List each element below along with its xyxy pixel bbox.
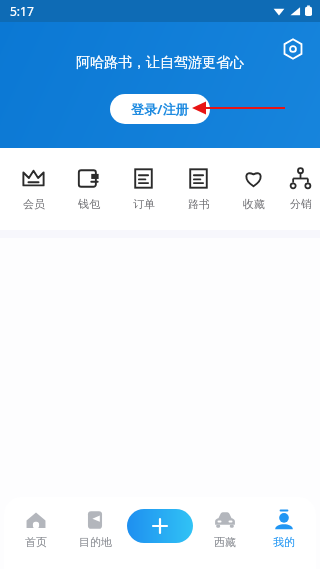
button[interactable]: 路书	[171, 148, 226, 230]
button[interactable]: 登录/注册	[110, 94, 210, 124]
button[interactable]: 收藏	[226, 148, 281, 230]
button[interactable]: 订单	[116, 148, 171, 230]
staticText: 我的	[273, 535, 295, 549]
staticText: 订单	[133, 197, 155, 211]
button[interactable]: 钱包	[61, 148, 116, 230]
staticText: 西藏	[214, 535, 236, 549]
staticText: 目的地	[79, 535, 112, 549]
button[interactable]: 目的地	[67, 509, 123, 549]
button[interactable]: Add	[127, 509, 193, 543]
staticText: 路书	[188, 197, 210, 211]
button[interactable]: 会员	[6, 148, 61, 230]
staticText: 收藏	[243, 197, 265, 211]
staticText: 会员	[23, 197, 45, 211]
button[interactable]: Settings	[278, 34, 308, 64]
staticText: 钱包	[78, 197, 100, 211]
button[interactable]: 首页	[8, 509, 64, 549]
staticText: 首页	[25, 535, 47, 549]
button[interactable]: 我的	[256, 509, 312, 549]
staticText: 分销	[290, 197, 312, 211]
button[interactable]: 分销	[281, 148, 320, 230]
button[interactable]: 西藏	[197, 509, 253, 549]
staticText: 5:17	[10, 3, 34, 19]
staticText: 阿哈路书，让自驾游更省心	[76, 54, 244, 72]
staticText: 登录/注册	[131, 100, 189, 118]
